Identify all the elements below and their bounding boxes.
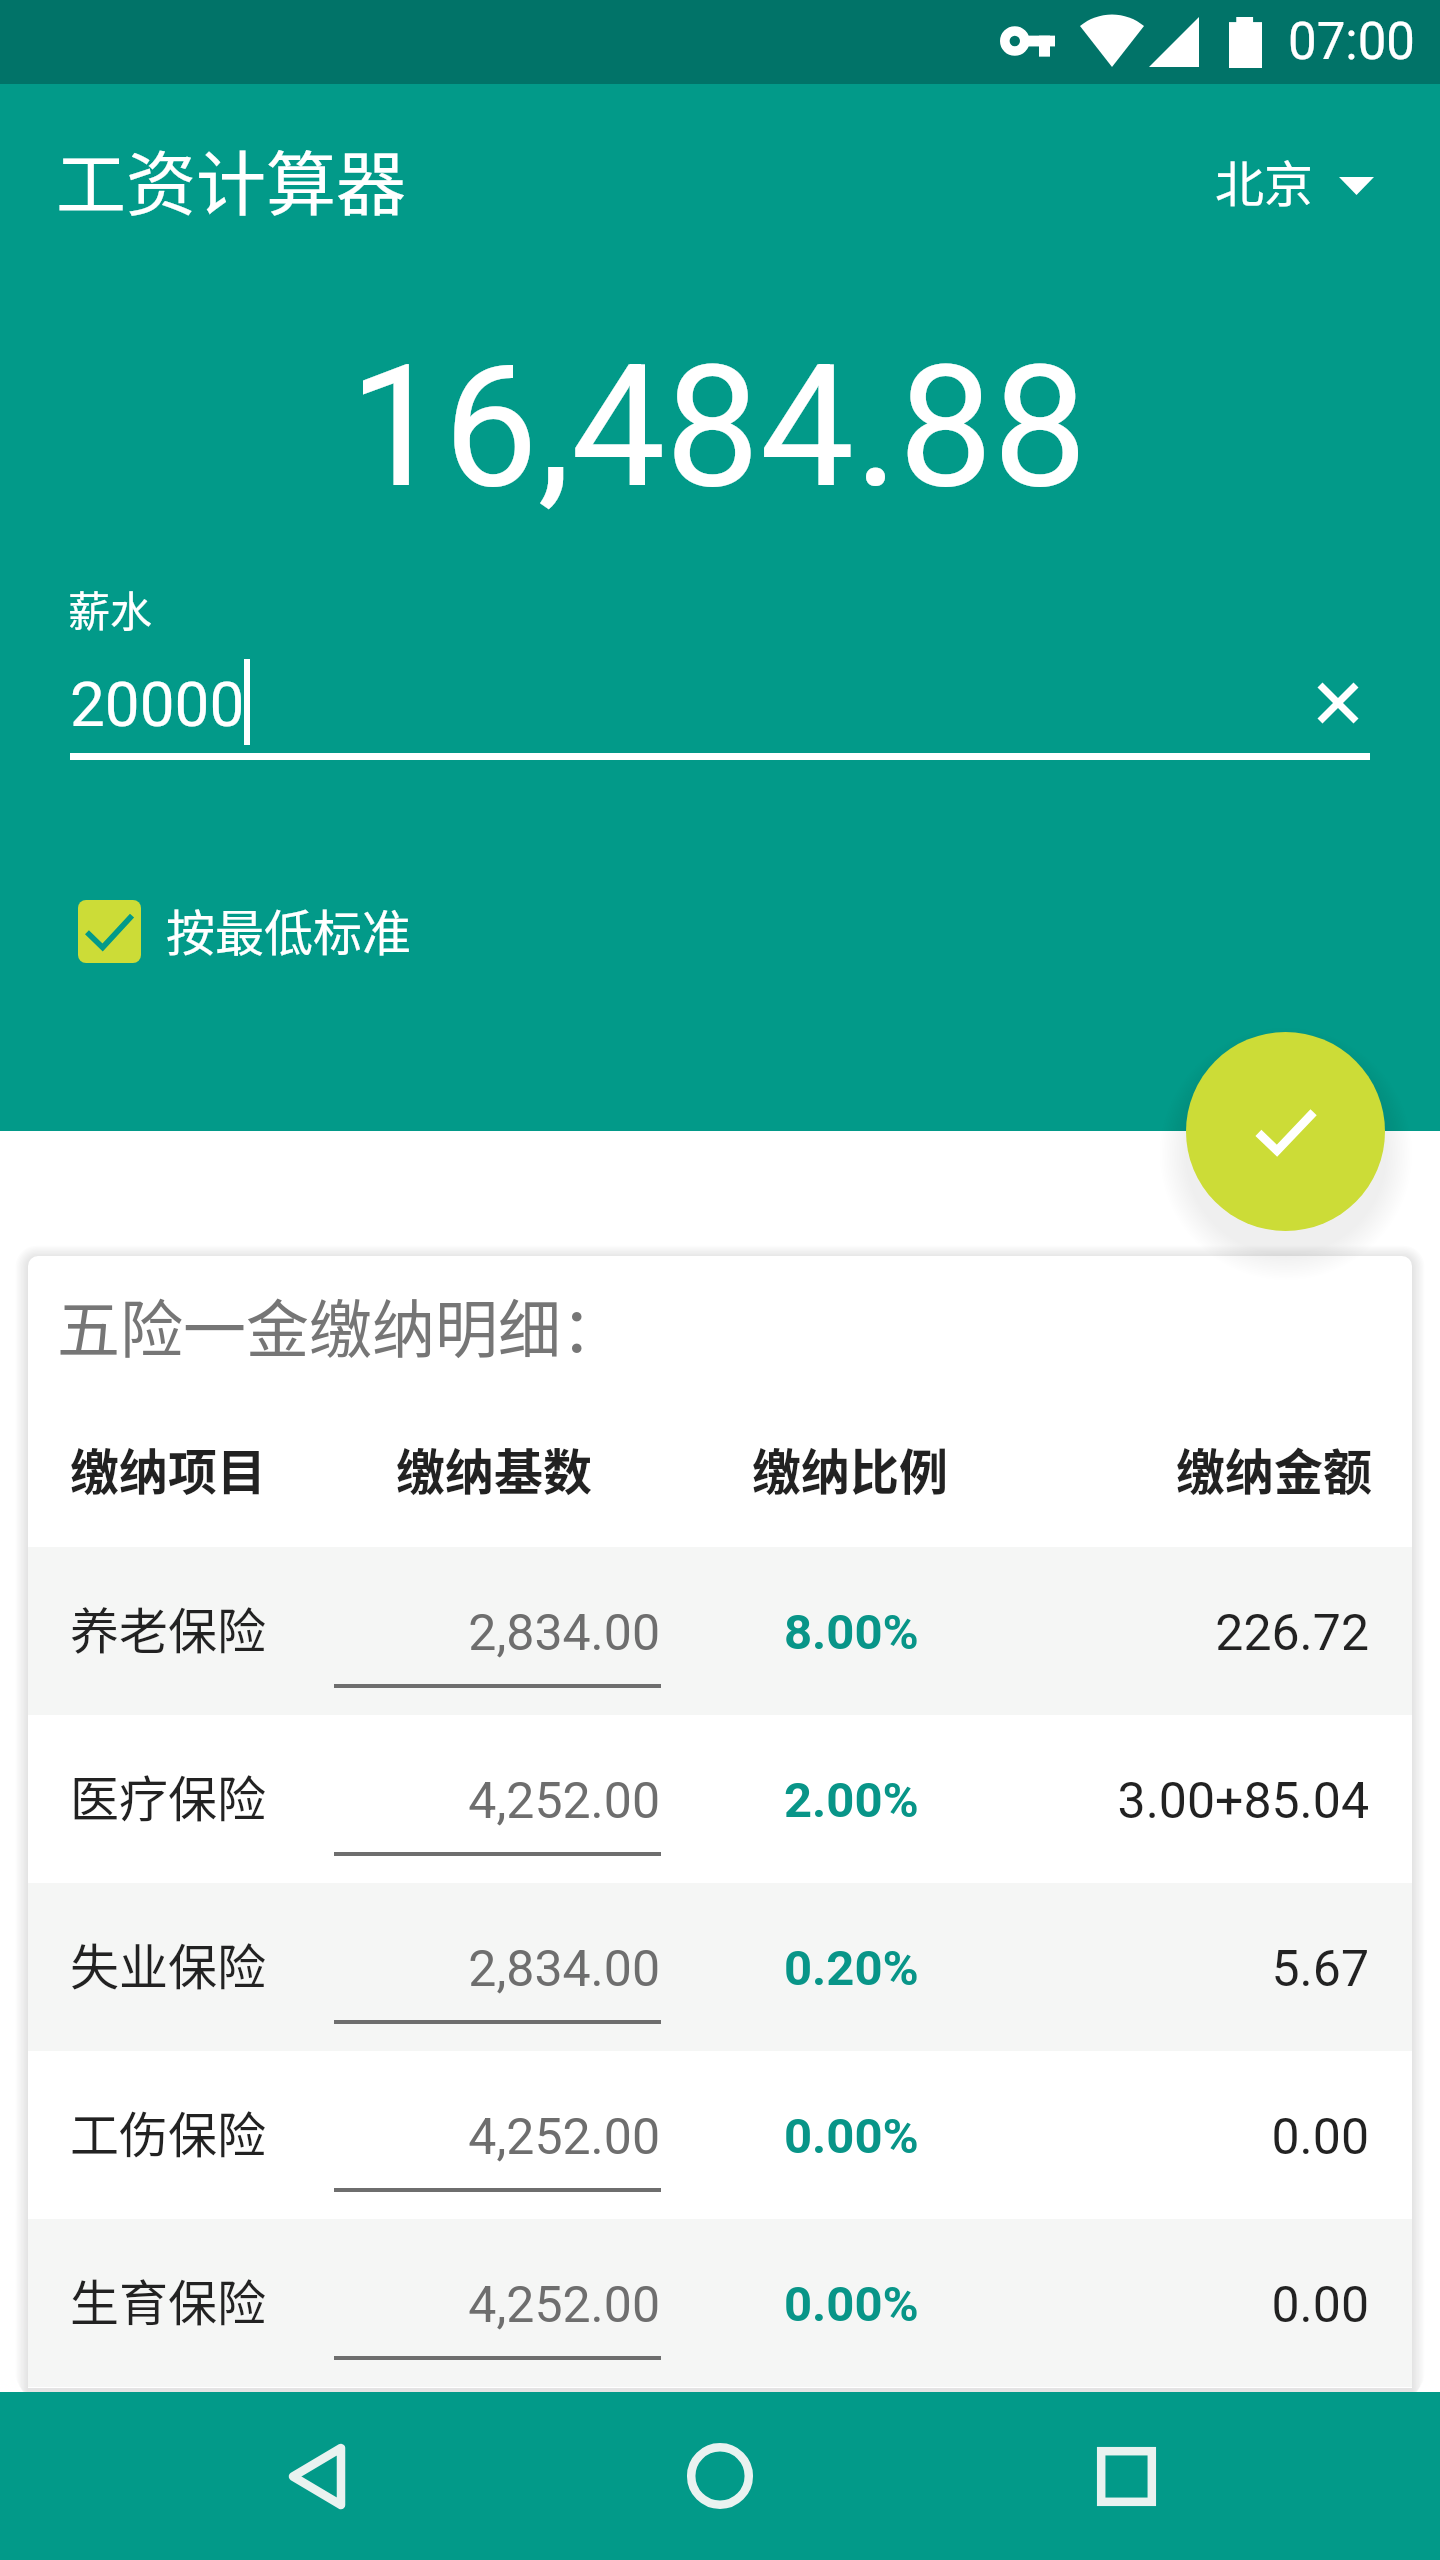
- staticText: 缴纳金额: [28, 1433, 1372, 1504]
- staticText: 16,484.88: [349, 329, 1088, 526]
- staticText: 缴纳基数: [396, 1433, 593, 1504]
- button[interactable]: Back: [232, 2392, 400, 2560]
- button[interactable]: Recents: [1042, 2392, 1210, 2560]
- staticText: 生育保险: [70, 2264, 267, 2335]
- staticText: 五险一金缴纳明细：: [57, 1279, 624, 1370]
- staticText: 0.00: [928, 2108, 1369, 2167]
- staticText: 按最低标准: [166, 894, 412, 965]
- staticText: 20000: [70, 668, 245, 741]
- button[interactable]: 失业保险: [28, 1883, 1412, 2051]
- button[interactable]: Salary input: [70, 640, 1280, 760]
- button[interactable]: Clear: [1303, 668, 1373, 738]
- staticText: 2.00%: [784, 1772, 919, 1829]
- staticText: 4,252.00: [334, 2108, 660, 2167]
- staticText: 07:00: [1288, 12, 1416, 72]
- staticText: 2,834.00: [334, 1604, 660, 1663]
- staticText: 4,252.00: [334, 1772, 660, 1831]
- button[interactable]: Home: [636, 2392, 804, 2560]
- staticText: 3.00+85.04: [928, 1772, 1369, 1831]
- staticText: 0.00%: [784, 2108, 919, 2165]
- staticText: 0.20%: [784, 1940, 919, 1997]
- staticText: 医疗保险: [70, 1760, 267, 1831]
- staticText: 工伤保险: [70, 2096, 267, 2167]
- button[interactable]: 北京: [1205, 135, 1384, 226]
- button[interactable]: 工伤保险: [28, 2051, 1412, 2219]
- staticText: 0.00: [928, 2276, 1369, 2335]
- button[interactable]: 医疗保险: [28, 1715, 1412, 1883]
- button[interactable]: 养老保险: [28, 1547, 1412, 1715]
- staticText: 失业保险: [70, 1928, 267, 1999]
- staticText: 5.67: [928, 1940, 1369, 1999]
- staticText: 226.72: [928, 1604, 1369, 1663]
- staticText: 养老保险: [70, 1592, 267, 1663]
- staticText: 2,834.00: [334, 1940, 660, 1999]
- staticText: 8.00%: [784, 1604, 919, 1661]
- staticText: 缴纳比例: [752, 1433, 949, 1504]
- staticText: 缴纳项目: [70, 1433, 267, 1504]
- button[interactable]: Calculate: [1186, 1032, 1385, 1231]
- button[interactable]: 按最低标准: [78, 896, 412, 967]
- staticText: 薪水: [68, 578, 153, 639]
- staticText: 工资计算器: [56, 129, 406, 230]
- staticText: 4,252.00: [334, 2276, 660, 2335]
- button[interactable]: 生育保险: [28, 2219, 1412, 2387]
- staticText: 0.00%: [784, 2276, 919, 2333]
- staticText: 北京: [1215, 145, 1314, 216]
